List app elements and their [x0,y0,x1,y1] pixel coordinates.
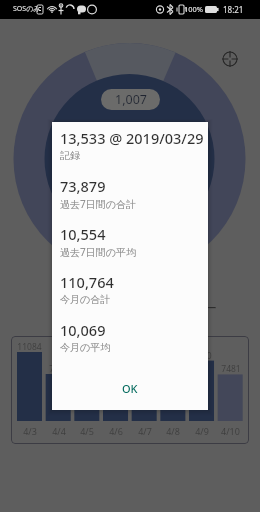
staticText: 110,764 [60,272,114,292]
staticText: 18:21 [223,4,244,15]
staticText: 4/9 [195,425,209,437]
staticText: 1,007 [115,91,147,108]
staticText: 4/5 [80,425,94,437]
staticText: 4/10 [221,425,240,437]
staticText: 消費カロリー [150,301,217,315]
staticText: 4/6 [109,425,123,437]
staticText: 4/7 [138,425,152,437]
staticText: 記録 [60,149,80,162]
staticText: 100% [184,4,204,14]
staticText: 10400 [103,345,128,357]
staticText: 過去7日間の平均 [60,245,136,259]
staticText: 4/3 [23,425,37,437]
staticText: 10,069 [60,320,106,340]
staticText: 4/8 [166,425,180,437]
staticText: OK [122,381,138,396]
button[interactable]: 1,007 [101,89,160,110]
button[interactable]: Goal [216,45,244,73]
staticText: 7550 [49,363,69,375]
staticText: 今月の平均 [60,341,111,354]
staticText: 4/4 [52,425,66,437]
button[interactable]: OK [52,372,208,404]
button[interactable]: 11084 [11,336,249,444]
staticText: 今月の合計 [60,293,111,306]
staticText: 過去7日間の合計 [60,197,136,211]
staticText: 9700 [192,350,212,362]
staticText: 7481 [221,363,241,375]
staticText: 10,554 [60,224,106,244]
staticText: 73,879 [60,176,106,196]
staticText: 11084 [17,341,42,353]
staticText: SOSのみ [13,4,41,14]
staticText: 13,533 @ 2019/03/29 [60,128,204,148]
